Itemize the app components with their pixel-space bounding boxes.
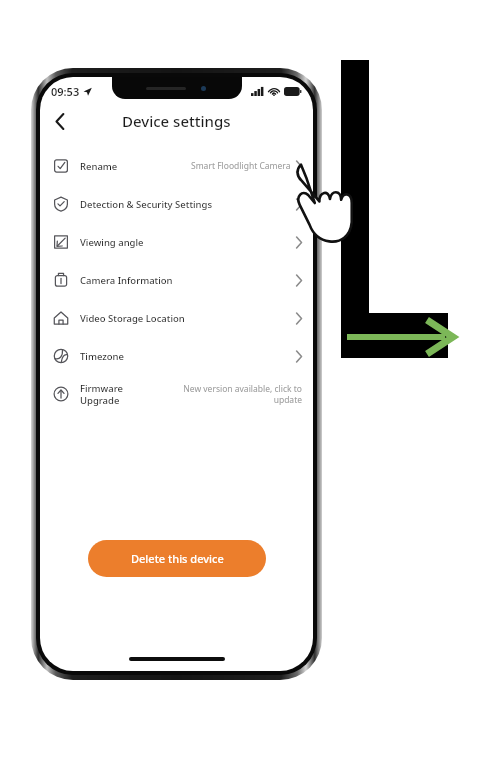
- staticText: Viewing angle: [80, 236, 144, 249]
- staticText: Smart Floodlight Camera: [191, 160, 291, 172]
- button[interactable]: Video Storage Location: [40, 299, 313, 337]
- staticText: Video Storage Location: [80, 312, 185, 325]
- staticText: Device settings: [122, 111, 231, 131]
- button[interactable]: Firmware Upgrade: [40, 375, 313, 413]
- button[interactable]: Delete this device: [88, 540, 266, 577]
- staticText: Firmware Upgrade: [80, 382, 123, 406]
- button[interactable]: Back: [46, 107, 74, 135]
- staticText: Delete this device: [131, 551, 224, 566]
- staticText: 09:53: [51, 84, 80, 99]
- staticText: Detection & Security Settings: [80, 198, 213, 211]
- staticText: Camera Information: [80, 274, 173, 287]
- staticText: Timezone: [80, 350, 125, 363]
- button[interactable]: Timezone: [40, 337, 313, 375]
- button[interactable]: Detection & Security Settings: [40, 185, 313, 223]
- staticText: New version available, click to update: [183, 383, 302, 405]
- button[interactable]: Viewing angle: [40, 223, 313, 261]
- staticText: Rename: [80, 160, 118, 173]
- button[interactable]: Camera Information: [40, 261, 313, 299]
- button[interactable]: Rename: [40, 147, 313, 185]
- other: Tap pointer: [293, 163, 359, 243]
